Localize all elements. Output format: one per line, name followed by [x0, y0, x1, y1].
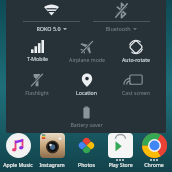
- button[interactable]: Chrome: [137, 133, 171, 168]
- staticText: Flashlight: [25, 89, 49, 96]
- staticText: ROKO 5.0: [36, 25, 61, 32]
- button[interactable]: Location: [62, 71, 111, 98]
- button[interactable]: Instagram: [35, 133, 69, 168]
- button[interactable]: Battery saver: [62, 104, 111, 130]
- button[interactable]: ROKO 5.0: [16, 2, 86, 32]
- button[interactable]: Apple Music: [1, 133, 35, 168]
- staticText: Bluetooth: [105, 25, 131, 32]
- button[interactable]: Cast screen: [111, 71, 160, 98]
- staticText: Airplane mode: [69, 56, 105, 63]
- staticText: Location: [76, 89, 97, 96]
- staticText: Play Store: [108, 161, 133, 168]
- staticText: Cast screen: [122, 89, 150, 96]
- staticText: Instagram: [39, 161, 65, 168]
- staticText: Auto-rotate: [122, 56, 150, 63]
- staticText: T-Mobile: [27, 55, 48, 62]
- button[interactable]: Airplane mode: [62, 38, 111, 65]
- button[interactable]: Flashlight: [12, 71, 62, 98]
- staticText: Photos: [78, 161, 95, 168]
- staticText: Battery saver: [70, 121, 103, 128]
- staticText: Chrome: [144, 161, 164, 168]
- button[interactable]: T-Mobile: [12, 38, 62, 64]
- button[interactable]: Play Store: [103, 133, 137, 168]
- button[interactable]: Auto-rotate: [111, 38, 160, 65]
- button[interactable]: Bluetooth: [86, 2, 156, 32]
- button[interactable]: Photos: [69, 133, 103, 168]
- staticText: Apple Music: [3, 161, 33, 168]
